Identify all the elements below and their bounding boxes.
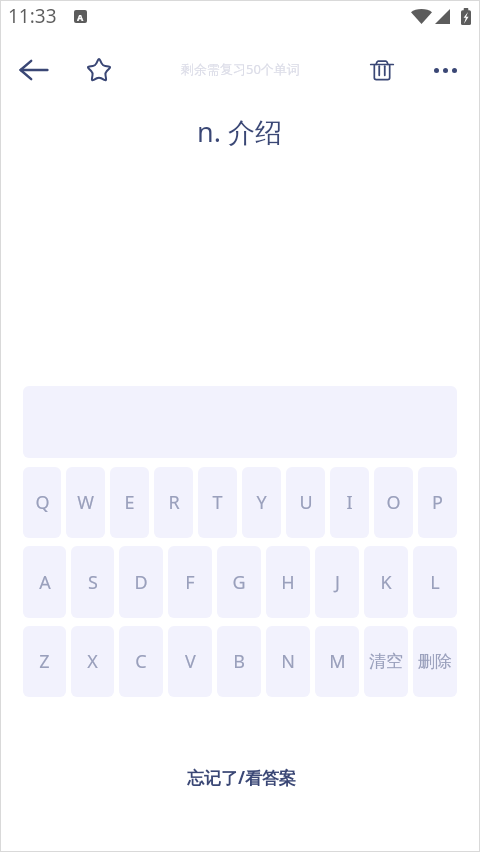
button[interactable]: Back — [10, 46, 58, 94]
button[interactable]: S — [71, 546, 114, 618]
staticText: J — [335, 570, 340, 595]
button[interactable]: Delete — [358, 46, 406, 94]
button[interactable]: 清空 — [364, 626, 408, 697]
button[interactable]: N — [266, 626, 310, 697]
button[interactable]: A — [23, 546, 66, 618]
staticText: 忘记了/看答案 — [187, 766, 297, 789]
staticText: U — [299, 490, 313, 515]
staticText: L — [430, 570, 440, 595]
button[interactable]: D — [119, 546, 163, 618]
staticText: Y — [256, 490, 267, 515]
staticText: S — [88, 570, 98, 595]
staticText: R — [168, 490, 180, 515]
button[interactable]: H — [266, 546, 310, 618]
button[interactable]: L — [413, 546, 457, 618]
staticText: N — [281, 649, 295, 674]
staticText: M — [329, 649, 346, 674]
staticText: K — [380, 570, 392, 595]
staticText: W — [77, 490, 94, 515]
button[interactable]: C — [119, 626, 163, 697]
staticText: 清空 — [369, 651, 403, 672]
staticText: A — [77, 11, 84, 23]
button[interactable]: T — [198, 467, 237, 538]
staticText: D — [134, 570, 148, 595]
button[interactable]: B — [217, 626, 261, 697]
staticText: E — [124, 490, 135, 515]
staticText: n. 介绍 — [197, 113, 282, 150]
button[interactable]: 删除 — [413, 626, 457, 697]
button[interactable]: G — [217, 546, 261, 618]
button[interactable]: Y — [242, 467, 281, 538]
button[interactable]: Favorite — [75, 46, 123, 94]
staticText: I — [346, 490, 353, 515]
staticText: 11:33 — [8, 3, 57, 29]
button[interactable]: J — [315, 546, 359, 618]
button[interactable]: Z — [23, 626, 66, 697]
button[interactable]: F — [168, 546, 212, 618]
staticText: 删除 — [418, 651, 452, 672]
staticText: Z — [39, 649, 50, 674]
staticText: X — [87, 649, 98, 674]
staticText: F — [185, 570, 195, 595]
staticText: B — [233, 649, 245, 674]
staticText: P — [432, 490, 443, 515]
button[interactable]: E — [110, 467, 149, 538]
staticText: C — [135, 649, 147, 674]
staticText: O — [386, 490, 401, 515]
button[interactable]: I — [330, 467, 369, 538]
button[interactable]: V — [168, 626, 212, 697]
staticText: 剩余需复习50个单词 — [181, 60, 300, 78]
button[interactable]: Q — [23, 467, 61, 538]
button[interactable]: X — [71, 626, 114, 697]
button[interactable]: W — [66, 467, 105, 538]
button[interactable]: 忘记了/看答案 — [175, 760, 309, 795]
staticText: V — [185, 649, 196, 674]
button[interactable]: K — [364, 546, 408, 618]
button[interactable]: U — [286, 467, 325, 538]
staticText: T — [212, 490, 223, 515]
button[interactable]: O — [374, 467, 413, 538]
staticText: H — [281, 570, 295, 595]
button[interactable]: M — [315, 626, 359, 697]
button[interactable]: R — [154, 467, 193, 538]
staticText: G — [232, 570, 246, 595]
staticText: A — [39, 570, 51, 595]
button[interactable]: P — [418, 467, 457, 538]
button[interactable]: More options — [421, 46, 469, 94]
staticText: Q — [35, 490, 50, 515]
